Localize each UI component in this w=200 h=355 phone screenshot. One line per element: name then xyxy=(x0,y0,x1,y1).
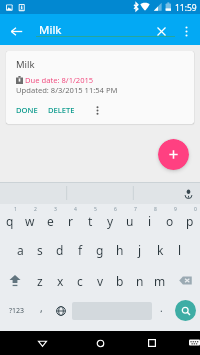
button[interactable]: k xyxy=(150,236,170,267)
button[interactable]: 2 xyxy=(20,204,40,236)
button[interactable]: Shift xyxy=(0,267,30,298)
staticText: o xyxy=(166,213,174,229)
staticText: 6 xyxy=(114,206,117,213)
staticText: w xyxy=(25,213,35,229)
button[interactable]: DONE xyxy=(12,102,42,118)
staticText: d xyxy=(56,242,64,258)
button[interactable]: s xyxy=(30,236,50,267)
staticText: 1 xyxy=(14,206,17,213)
button[interactable]: Hide keyboard xyxy=(188,331,200,355)
button[interactable]: c xyxy=(70,267,90,298)
staticText: a xyxy=(17,242,24,258)
staticText: r xyxy=(68,213,73,229)
button[interactable]: 7 xyxy=(120,204,140,236)
button[interactable]: 1 xyxy=(0,204,20,236)
staticText: Due date: 8/1/2015 xyxy=(25,75,94,85)
button[interactable]: Recent apps xyxy=(138,331,166,355)
button[interactable]: , xyxy=(33,298,50,331)
staticText: u xyxy=(126,213,134,229)
staticText: v xyxy=(97,273,104,289)
staticText: ?123 xyxy=(9,306,25,316)
button[interactable]: m xyxy=(150,267,170,298)
staticText: 7 xyxy=(134,206,137,213)
button[interactable]: v xyxy=(90,267,110,298)
button[interactable]: j xyxy=(130,236,150,267)
button[interactable]: Search xyxy=(175,300,196,321)
button[interactable]: Change language xyxy=(50,298,71,331)
button[interactable]: Backspace xyxy=(170,267,200,298)
button[interactable]: More options xyxy=(175,20,197,42)
staticText: e xyxy=(47,213,54,229)
staticText: x xyxy=(57,273,64,289)
staticText: b xyxy=(116,273,124,289)
staticText: f xyxy=(78,242,83,258)
staticText: . xyxy=(160,301,163,315)
button[interactable]: 4 xyxy=(60,204,80,236)
button[interactable]: n xyxy=(130,267,150,298)
button[interactable]: 6 xyxy=(100,204,120,236)
button[interactable]: x xyxy=(50,267,70,298)
staticText: Milk xyxy=(39,22,62,38)
staticText: DONE xyxy=(16,105,38,115)
staticText: h xyxy=(116,242,124,258)
staticText: i xyxy=(148,213,152,229)
staticText: p xyxy=(186,213,194,229)
staticText: q xyxy=(6,213,14,229)
button[interactable]: 0 xyxy=(180,204,200,236)
button[interactable]: DELETE xyxy=(44,102,79,118)
staticText: , xyxy=(40,301,43,315)
staticText: g xyxy=(96,242,104,258)
button[interactable]: Navigate up xyxy=(2,17,30,45)
button[interactable]: 5 xyxy=(80,204,100,236)
button[interactable]: More options xyxy=(89,102,105,118)
button[interactable]: ?123 xyxy=(0,298,33,331)
staticText: t xyxy=(88,213,93,229)
staticText: c xyxy=(77,273,83,289)
staticText: j xyxy=(138,242,142,258)
staticText: DELETE xyxy=(48,105,75,115)
staticText: 3 xyxy=(54,206,57,213)
button[interactable]: h xyxy=(110,236,130,267)
staticText: 11:59 xyxy=(175,2,197,14)
button[interactable]: g xyxy=(90,236,110,267)
staticText: 5 xyxy=(94,206,97,213)
button[interactable]: Home xyxy=(86,331,114,355)
button[interactable]: l xyxy=(170,236,190,267)
staticText: k xyxy=(157,242,164,258)
staticText: m xyxy=(154,273,166,289)
staticText: y xyxy=(107,213,114,229)
button[interactable]: a xyxy=(10,236,30,267)
staticText: Milk xyxy=(16,58,35,71)
button[interactable]: Milk xyxy=(6,51,194,124)
staticText: 8 xyxy=(154,206,157,213)
staticText: 0 xyxy=(194,206,197,213)
staticText: s xyxy=(37,242,43,258)
button[interactable]: 9 xyxy=(160,204,180,236)
staticText: l xyxy=(178,242,182,258)
staticText: 9 xyxy=(174,206,177,213)
staticText: z xyxy=(37,273,43,289)
button[interactable]: 8 xyxy=(140,204,160,236)
button[interactable]: Voice input xyxy=(182,187,194,199)
button[interactable]: Back xyxy=(28,331,56,355)
button[interactable]: Add task xyxy=(158,139,189,170)
staticText: Updated: 8/3/2015 11:54 PM xyxy=(16,85,118,95)
button[interactable]: . xyxy=(153,298,170,331)
button[interactable]: f xyxy=(70,236,90,267)
button[interactable]: b xyxy=(110,267,130,298)
staticText: 4 xyxy=(74,206,77,213)
button[interactable]: d xyxy=(50,236,70,267)
button[interactable]: z xyxy=(30,267,50,298)
staticText: n xyxy=(136,273,144,289)
staticText: 2 xyxy=(34,206,37,213)
button[interactable]: Clear text xyxy=(149,19,173,43)
button[interactable]: 3 xyxy=(40,204,60,236)
